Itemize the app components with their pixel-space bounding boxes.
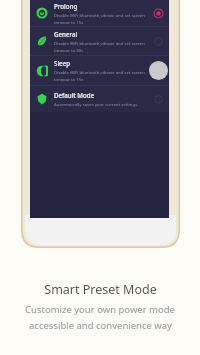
staticText: Prolong — [54, 2, 78, 10]
staticText: Sleep — [54, 59, 71, 67]
staticText: timeout to 15s — [54, 19, 84, 25]
staticText: General — [54, 30, 78, 38]
button[interactable]: Select Prolong — [154, 9, 163, 18]
button[interactable]: Prolong — [30, 0, 169, 26]
staticText: Smart Preset Mode — [44, 281, 157, 298]
staticText: Automatically saves your current setting… — [54, 101, 139, 107]
button[interactable]: Select Default Mode — [154, 95, 163, 104]
staticText: Disable WiFi,bluetooth,vibrate and set s… — [54, 12, 145, 18]
staticText: timeout to 30s — [54, 47, 84, 53]
staticText: timeout to 15s — [54, 76, 84, 82]
staticText: Default Mode — [54, 91, 95, 99]
button[interactable]: Sleep — [30, 56, 169, 85]
button[interactable]: General — [30, 27, 169, 55]
staticText: Disable WiFi,bluetooth,vibrate and set s… — [54, 69, 145, 75]
button[interactable]: Default Mode — [30, 86, 169, 112]
staticText: accessible and convenience way — [29, 319, 172, 332]
staticText: Disable WiFi,bluetooth,vibrate and set s… — [54, 40, 145, 46]
button[interactable]: Select General — [154, 37, 163, 46]
staticText: Customize your own power mode — [25, 303, 175, 316]
